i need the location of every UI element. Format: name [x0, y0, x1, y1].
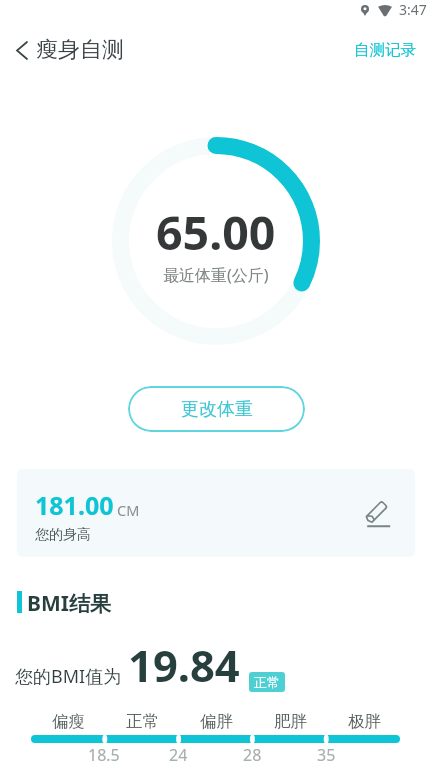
staticText: 35: [317, 744, 336, 766]
staticText: 更改体重: [181, 398, 253, 421]
staticText: 最近体重(公斤): [163, 264, 269, 286]
staticText: 偏瘦: [52, 711, 85, 732]
button[interactable]: 181.00: [17, 469, 415, 557]
staticText: 肥胖: [274, 711, 307, 732]
staticText: 正常: [126, 711, 159, 732]
staticText: BMI结果: [27, 589, 111, 618]
staticText: 65.00: [156, 200, 276, 263]
staticText: 瘦身自测: [36, 36, 124, 64]
staticText: 19.84: [128, 635, 240, 694]
staticText: 您的身高: [35, 526, 91, 544]
staticText: CM: [117, 500, 140, 520]
button[interactable]: Edit height: [366, 500, 402, 530]
staticText: 正常: [254, 674, 280, 690]
staticText: 极胖: [348, 711, 381, 732]
staticText: 3:47: [399, 0, 427, 19]
staticText: 28: [243, 744, 262, 766]
staticText: 偏胖: [200, 711, 233, 732]
button[interactable]: Back: [6, 34, 38, 66]
button[interactable]: 自测记录: [338, 32, 432, 68]
staticText: 18.5: [88, 744, 120, 766]
staticText: 您的BMI值为: [15, 664, 122, 689]
staticText: 自测记录: [354, 40, 416, 60]
staticText: 24: [169, 744, 188, 766]
button[interactable]: 更改体重: [128, 386, 305, 432]
staticText: 181.00: [35, 488, 114, 522]
